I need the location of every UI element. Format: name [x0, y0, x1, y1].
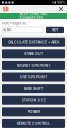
staticText: BLUE LEVEL PRO CONNECTED [19, 12, 47, 20]
staticText: SET [52, 28, 58, 32]
staticText: STATION X,Y,Z [21, 98, 45, 102]
staticText: USE GPS POINT [20, 75, 47, 79]
staticText: REMOTE CONTROL [17, 121, 50, 125]
button[interactable]: App logo [2, 5, 10, 13]
staticText: L [5, 7, 7, 11]
staticText: BASE SHIFT [24, 86, 43, 91]
staticText: STAKE OUT [24, 52, 43, 56]
button[interactable]: ADD/SET GPS POINT [2, 61, 65, 70]
button[interactable]: CALCULATE DISTANCE + AREA [2, 38, 65, 47]
staticText: Pole Height (ft) [2, 21, 26, 25]
button[interactable]: REMOTE CONTROL [2, 119, 65, 128]
staticText: ADD/SET GPS POINT [16, 63, 50, 67]
staticText: CALCULATE DISTANCE + AREA [8, 40, 59, 44]
button[interactable]: Close [57, 5, 65, 13]
button[interactable]: BASE SHIFT [2, 84, 65, 93]
button[interactable]: STAKE OUT [2, 49, 65, 58]
button[interactable]: USE GPS POINT [2, 72, 65, 81]
staticText: POWER [27, 110, 39, 114]
button[interactable]: POWER [2, 107, 65, 116]
staticText: 6.50 [3, 28, 10, 32]
button[interactable]: SET [46, 27, 64, 33]
staticText: 100% [57, 0, 65, 5]
button[interactable]: STATION X,Y,Z [2, 96, 65, 105]
